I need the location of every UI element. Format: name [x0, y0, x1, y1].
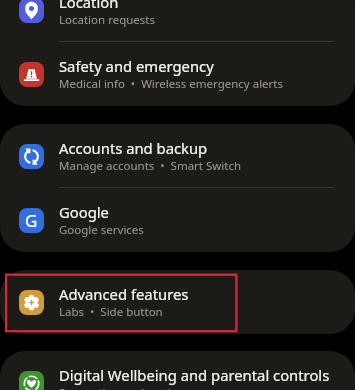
staticText: Google services — [59, 222, 144, 238]
button[interactable]: Digital Wellbeing and parental controls — [0, 351, 355, 390]
staticText: Google — [59, 202, 109, 222]
staticText: Advanced features — [59, 284, 189, 304]
button[interactable]: Advanced features — [0, 270, 355, 334]
staticText: Medical info • Wireless emergency alerts — [59, 76, 283, 92]
button[interactable]: G — [0, 188, 355, 252]
staticText: G — [25, 209, 38, 232]
staticText: Labs • Side button — [59, 304, 163, 320]
staticText: Digital Wellbeing and parental controls — [59, 365, 330, 385]
staticText: Accounts and backup — [59, 138, 208, 158]
staticText: Screen time • App timers — [59, 385, 199, 390]
staticText: Safety and emergency — [59, 56, 214, 76]
staticText: Location requests — [59, 12, 155, 28]
staticText: Location — [59, 0, 119, 12]
button[interactable]: Accounts and backup — [0, 124, 355, 188]
button[interactable]: Location — [0, 0, 355, 42]
button[interactable]: Safety and emergency — [0, 42, 355, 106]
staticText: Manage accounts • Smart Switch — [59, 158, 242, 174]
